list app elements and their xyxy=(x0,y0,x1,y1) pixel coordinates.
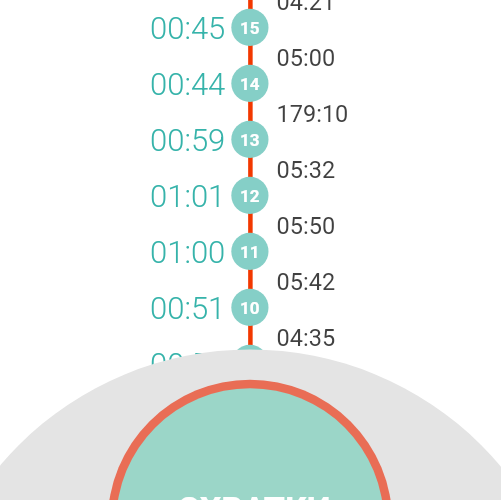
button[interactable]: Contraction 11, duration 01:00, interval… xyxy=(0,223,501,279)
button[interactable]: Contraction 14, duration 00:44, interval… xyxy=(0,55,501,111)
button[interactable]: СХВАТКИ — start contraction xyxy=(104,353,398,500)
button[interactable]: Contraction 12, duration 01:01, interval… xyxy=(0,167,501,223)
button[interactable]: Contraction 15, duration 00:45, interval… xyxy=(0,0,501,55)
button[interactable]: Contraction 9, duration 00:52, interval … xyxy=(0,335,501,391)
button[interactable]: Contraction 13, duration 00:59, interval… xyxy=(0,111,501,167)
button[interactable]: Contraction 10, duration 00:51, interval… xyxy=(0,279,501,335)
